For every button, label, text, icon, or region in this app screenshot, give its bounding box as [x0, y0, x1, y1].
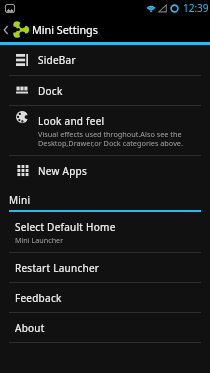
- staticText: About: [15, 321, 45, 335]
- button[interactable]: Restart Launcher: [0, 253, 210, 282]
- button[interactable]: Navigate up: [0, 16, 12, 42]
- button[interactable]: SideBar: [0, 45, 210, 75]
- staticText: New Apps: [38, 164, 87, 178]
- staticText: Select Default Home: [15, 220, 116, 234]
- button[interactable]: About: [0, 313, 210, 342]
- staticText: Mini: [9, 193, 31, 207]
- staticText: Look and feel: [38, 114, 105, 128]
- staticText: Restart Launcher: [15, 261, 100, 275]
- staticText: Mini Launcher: [15, 235, 64, 245]
- button[interactable]: Look and feel: [0, 106, 210, 155]
- staticText: 12:39: [183, 1, 209, 15]
- button[interactable]: New Apps: [0, 156, 210, 186]
- staticText: SideBar: [38, 53, 76, 67]
- staticText: Dock: [38, 84, 63, 98]
- button[interactable]: Dock: [0, 76, 210, 105]
- button[interactable]: Select Default Home: [0, 212, 210, 252]
- button[interactable]: Feedback: [0, 283, 210, 312]
- staticText: Mini Settings: [32, 22, 98, 37]
- staticText: Feedback: [15, 291, 62, 305]
- staticText: Visual effects used throghout.Also see t…: [38, 129, 183, 148]
